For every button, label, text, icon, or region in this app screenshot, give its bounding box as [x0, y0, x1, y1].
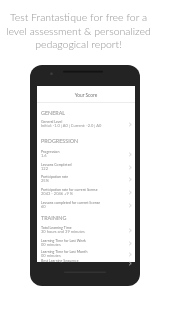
staticText: 25% [41, 178, 49, 183]
button[interactable]: Learning Time for Last Month [37, 249, 135, 259]
staticText: Progression [41, 149, 60, 153]
button[interactable]: Participation rate for current license [37, 187, 135, 197]
staticText: Lessons completed for current license [41, 200, 101, 204]
staticText: PROGRESSION [41, 138, 79, 144]
staticText: Your Score [37, 92, 135, 98]
button[interactable]: Best Learning Sequence [37, 258, 135, 268]
button[interactable]: Participation rate [37, 174, 135, 184]
button[interactable]: General Level [37, 119, 135, 129]
button[interactable]: Learning Time for Last Week [37, 238, 135, 248]
staticText: 122 [41, 166, 48, 171]
staticText: 00 minutes [41, 253, 61, 258]
staticText: 60 [41, 204, 46, 209]
button[interactable]: Progression [37, 149, 135, 159]
staticText: Initial: -1.0 | A0 | Current: -2.0 | A0 [41, 123, 102, 128]
staticText: Participation rate [41, 174, 69, 178]
staticText: Learning Time for Last Month [41, 249, 88, 253]
staticText: GENERAL [41, 110, 66, 116]
staticText: 1.6 [41, 153, 47, 158]
staticText: Participation rate for current license [41, 187, 98, 191]
staticText: Total Learning Time [41, 225, 72, 229]
button[interactable]: Lessons Completed [37, 162, 135, 172]
staticText: Test Frantastique for free for a level a… [0, 11, 157, 50]
button[interactable]: Total Learning Time [37, 225, 135, 235]
staticText: Learning Time for Last Week [41, 238, 86, 242]
button[interactable]: Lessons completed for current license [37, 200, 135, 210]
staticText: 00 minutes [41, 242, 61, 247]
staticText: General Level [41, 119, 63, 123]
staticText: Best Learning Sequence [41, 258, 79, 262]
staticText: Lessons Completed [41, 162, 72, 166]
staticText: TRAINING [41, 215, 67, 221]
staticText: 2043 - 2046 +9 % [41, 191, 73, 196]
staticText: 30 hours and 39 minutes [41, 229, 85, 234]
